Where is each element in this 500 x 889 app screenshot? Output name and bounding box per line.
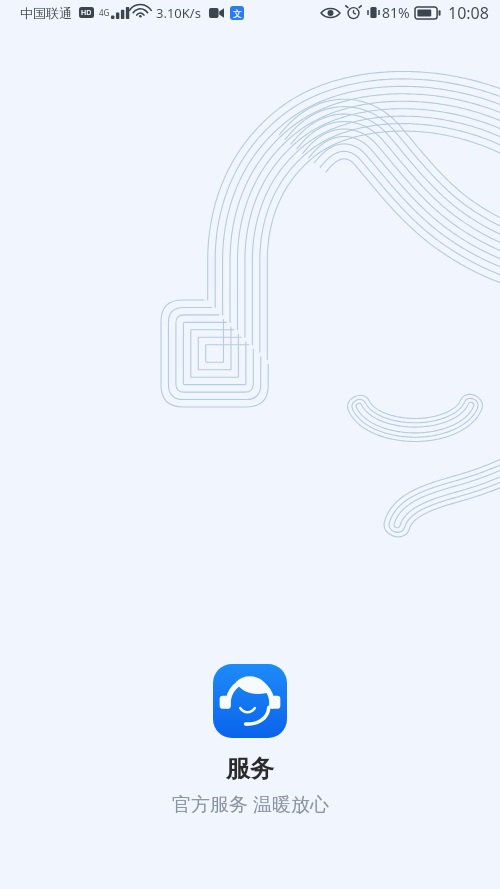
staticText: HD: [81, 8, 92, 18]
staticText: 3.10K/s: [156, 4, 201, 22]
staticText: 服务: [226, 754, 274, 784]
staticText: 文: [233, 8, 242, 19]
staticText: 官方服务 温暖放心: [172, 791, 329, 817]
staticText: 10:08: [448, 2, 489, 24]
staticText: 4G: [99, 7, 110, 18]
staticText: 81%: [382, 3, 410, 22]
staticText: 中国联通: [20, 5, 72, 21]
